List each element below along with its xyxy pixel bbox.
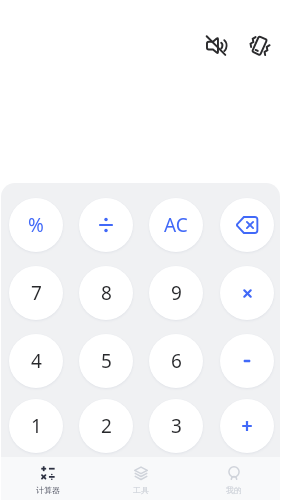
staticText: 3 (171, 413, 182, 439)
staticText: 我的 (226, 485, 242, 495)
button[interactable]: 3 (149, 399, 203, 453)
button[interactable] (220, 198, 274, 252)
button[interactable]: 9 (149, 266, 203, 320)
staticText: 9 (171, 280, 182, 306)
button[interactable]: 6 (149, 334, 203, 388)
button[interactable]: 工具 (94, 457, 187, 500)
button[interactable]: 5 (79, 334, 133, 388)
button[interactable]: 2 (79, 399, 133, 453)
staticText: 4 (31, 348, 42, 374)
button[interactable] (220, 334, 274, 388)
staticText: 7 (31, 280, 42, 306)
staticText: 5 (101, 348, 112, 374)
button[interactable]: 7 (9, 266, 63, 320)
staticText: 6 (171, 348, 182, 374)
staticText: 计算器 (36, 485, 60, 495)
staticText: 8 (101, 280, 112, 306)
staticText: 2 (101, 413, 112, 439)
button[interactable]: % (9, 198, 63, 252)
button[interactable]: 1 (9, 399, 63, 453)
button[interactable]: 我的 (187, 457, 280, 500)
staticText: AC (164, 212, 188, 238)
button[interactable]: AC (149, 198, 203, 252)
button[interactable] (220, 266, 274, 320)
button[interactable] (220, 399, 274, 453)
button[interactable]: 8 (79, 266, 133, 320)
staticText: 1 (31, 413, 42, 439)
staticText: 工具 (133, 485, 149, 495)
button[interactable]: Sound off (199, 28, 233, 62)
button[interactable]: 计算器 (1, 457, 94, 500)
button[interactable] (79, 198, 133, 252)
button[interactable]: Vibrate (242, 28, 276, 62)
button[interactable]: 4 (9, 334, 63, 388)
staticText: % (28, 212, 44, 238)
